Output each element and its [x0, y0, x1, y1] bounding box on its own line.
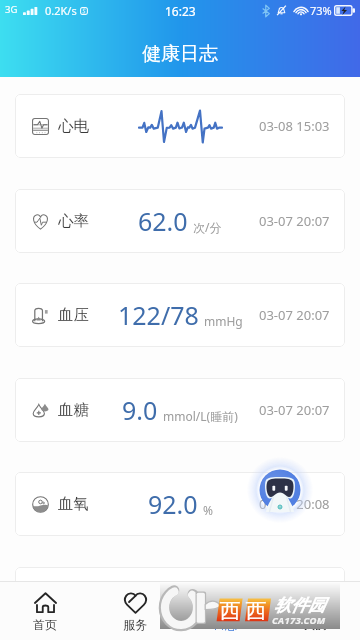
- staticText: 16:23: [165, 3, 196, 19]
- button[interactable]: AI assistant: [247, 457, 313, 523]
- staticText: 92.0: [148, 487, 198, 521]
- staticText: 73%: [310, 3, 332, 18]
- staticText: 03-07 20:07: [259, 306, 330, 324]
- staticText: 03-07 20:07: [259, 212, 330, 230]
- staticText: 软件园: [274, 595, 325, 616]
- button[interactable]: 心率: [15, 189, 345, 253]
- staticText: 0.2K/s: [45, 3, 77, 18]
- staticText: 我的: [303, 617, 327, 632]
- button[interactable]: 日志: [180, 582, 270, 640]
- staticText: 心率: [58, 211, 89, 231]
- staticText: 122/78: [118, 298, 199, 332]
- staticText: CA173.COM: [272, 614, 326, 627]
- staticText: 62.0: [138, 204, 188, 238]
- button[interactable]: 我的: [270, 582, 360, 640]
- staticText: 3G: [5, 3, 18, 16]
- staticText: 健康日志: [142, 42, 218, 66]
- staticText: 03-08 15:03: [259, 117, 330, 135]
- button[interactable]: 血糖: [15, 378, 345, 442]
- button[interactable]: 心电: [15, 94, 345, 158]
- button[interactable]: 首页: [0, 582, 90, 640]
- staticText: %: [203, 502, 213, 518]
- staticText: 血压: [58, 305, 89, 325]
- staticText: 03-07 20:08: [259, 495, 330, 513]
- button[interactable]: 血压: [15, 283, 345, 347]
- staticText: 血氧: [58, 494, 89, 514]
- staticText: 心电: [58, 116, 89, 136]
- button[interactable]: [15, 567, 345, 631]
- staticText: mmol/L(睡前): [163, 408, 238, 424]
- button[interactable]: 血氧: [15, 472, 345, 536]
- staticText: 服务: [123, 617, 147, 632]
- staticText: 9.0: [122, 393, 158, 427]
- staticText: 首页: [33, 617, 57, 632]
- staticText: 次/分: [193, 219, 222, 235]
- staticText: 西西: [217, 598, 269, 624]
- staticText: 血糖: [58, 400, 89, 420]
- staticText: mmHg: [204, 313, 243, 329]
- staticText: 03-07 20:07: [259, 401, 330, 419]
- button[interactable]: 服务: [90, 582, 180, 640]
- staticText: 日志: [213, 617, 237, 632]
